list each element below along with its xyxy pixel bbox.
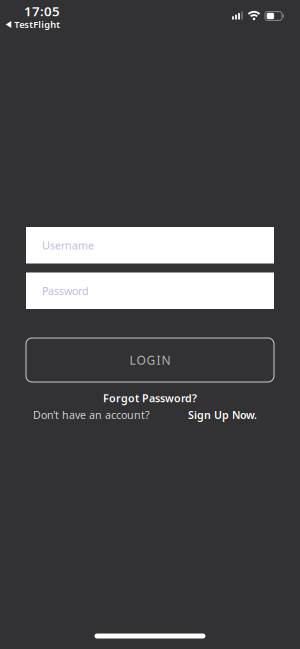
- button[interactable]: Forgot Password?: [103, 391, 197, 405]
- staticText: Don't have an account?: [33, 408, 150, 422]
- staticText: 17:05: [24, 2, 60, 20]
- staticText: Sign Up Now.: [188, 408, 257, 422]
- button[interactable]: Sign Up Now.: [188, 408, 257, 422]
- staticText: TestFlight: [14, 18, 60, 31]
- staticText: LOGIN: [129, 352, 170, 368]
- button[interactable]: Username text field: [26, 227, 274, 263]
- button[interactable]: Password text field: [26, 272, 274, 309]
- button[interactable]: Back to TestFlight: [6, 18, 60, 31]
- staticText: Forgot Password?: [103, 391, 197, 405]
- staticText: Password: [42, 284, 89, 298]
- button[interactable]: LOGIN: [26, 338, 274, 382]
- staticText: Username: [42, 238, 94, 252]
